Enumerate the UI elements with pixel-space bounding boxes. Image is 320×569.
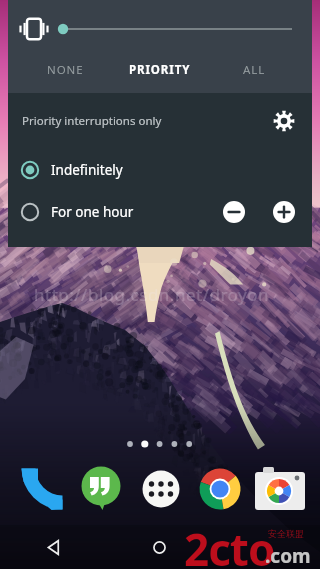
button[interactable]: PRIORITY (112, 52, 207, 88)
staticText: http://blog.csdn.net/droyon (34, 283, 269, 306)
button[interactable]: For one hour (8, 191, 212, 233)
button[interactable]: Indefinitely (8, 149, 312, 191)
button[interactable]: Decrease duration (212, 191, 256, 233)
button[interactable]: Increase duration (256, 191, 312, 233)
staticText: .com (265, 543, 311, 569)
button[interactable]: Recent apps (213, 525, 320, 569)
staticText: 2cto (184, 519, 275, 569)
button[interactable]: ALL (207, 52, 302, 88)
button[interactable]: Settings (256, 93, 312, 149)
button[interactable]: Ringer mode: vibrate (8, 0, 60, 57)
staticText: Indefinitely (51, 161, 123, 179)
button[interactable]: Home (106, 525, 213, 569)
staticText: For one hour (51, 203, 134, 221)
staticText: ALL (243, 62, 266, 78)
button[interactable]: Back (0, 525, 106, 569)
button[interactable]: NONE (18, 52, 112, 88)
staticText: PRIORITY (129, 62, 191, 78)
button[interactable]: Volume slider (60, 0, 292, 57)
staticText: Priority interruptions only (22, 113, 162, 129)
staticText: NONE (47, 62, 84, 78)
staticText: 安全联盟 (268, 528, 304, 539)
